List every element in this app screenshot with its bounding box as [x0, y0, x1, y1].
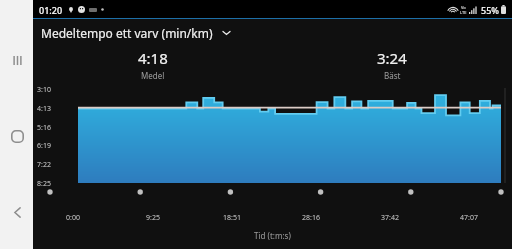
staticText: Vo — [461, 5, 466, 10]
staticText: Medeltempo ett varv (min/km) — [41, 25, 213, 41]
button[interactable]: 3:24 — [272, 46, 512, 86]
button[interactable]: Recent apps — [1, 44, 33, 76]
staticText: 01:20 — [39, 4, 63, 16]
staticText: 9:25 — [146, 213, 160, 223]
staticText: 3:24 — [377, 48, 407, 68]
staticText: 5:16 — [37, 123, 51, 133]
button[interactable]: Home — [1, 120, 33, 152]
button[interactable]: 4:18 — [33, 46, 272, 86]
button[interactable]: Back — [1, 196, 33, 228]
staticText: 18:51 — [223, 213, 241, 223]
staticText: 37:42 — [381, 213, 399, 223]
staticText: 7:22 — [37, 160, 51, 170]
staticText: 8:25 — [37, 179, 51, 189]
staticText: 4:13 — [37, 104, 51, 114]
staticText: 47:07 — [460, 213, 478, 223]
button[interactable]: Medeltempo ett varv (min/km) — [33, 19, 512, 46]
staticText: 55% — [481, 4, 499, 16]
staticText: LTE — [460, 10, 467, 15]
staticText: 6:19 — [37, 141, 51, 151]
staticText: Medel — [141, 70, 165, 81]
staticText: 0:00 — [66, 213, 80, 223]
staticText: 28:16 — [302, 213, 320, 223]
staticText: Bäst — [384, 70, 401, 81]
staticText: Tid (t:m:s) — [254, 230, 291, 241]
staticText: 3:10 — [37, 85, 51, 95]
staticText: 4:18 — [138, 48, 168, 68]
